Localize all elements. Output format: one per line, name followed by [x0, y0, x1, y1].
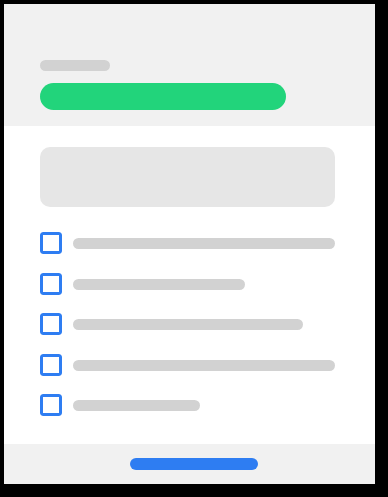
button[interactable]: Checklist item 1	[40, 232, 388, 254]
button[interactable]: Checklist item 2	[40, 273, 388, 295]
button[interactable]: Checklist item 4	[40, 354, 388, 376]
button[interactable]: Continue	[130, 458, 258, 470]
button[interactable]: Checklist item 3	[40, 313, 388, 335]
button[interactable]: Checklist item 5	[40, 394, 388, 416]
button[interactable]: Primary action	[40, 83, 286, 110]
